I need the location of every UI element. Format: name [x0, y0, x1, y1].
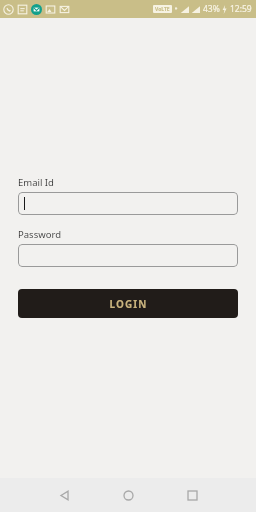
button[interactable]: Home	[106, 478, 150, 512]
button[interactable]: Recent apps	[170, 478, 214, 512]
staticText: LOGIN	[109, 297, 148, 311]
staticText: 43%	[203, 3, 220, 15]
staticText: 12:59	[230, 3, 252, 15]
button[interactable]: Password input	[18, 244, 238, 267]
button[interactable]: Email Id input	[18, 192, 238, 215]
staticText: Password	[18, 228, 61, 241]
staticText: VoLTE	[155, 6, 170, 13]
staticText: Email Id	[18, 176, 54, 189]
button[interactable]: Back	[42, 478, 86, 512]
button[interactable]: LOGIN	[18, 289, 238, 318]
